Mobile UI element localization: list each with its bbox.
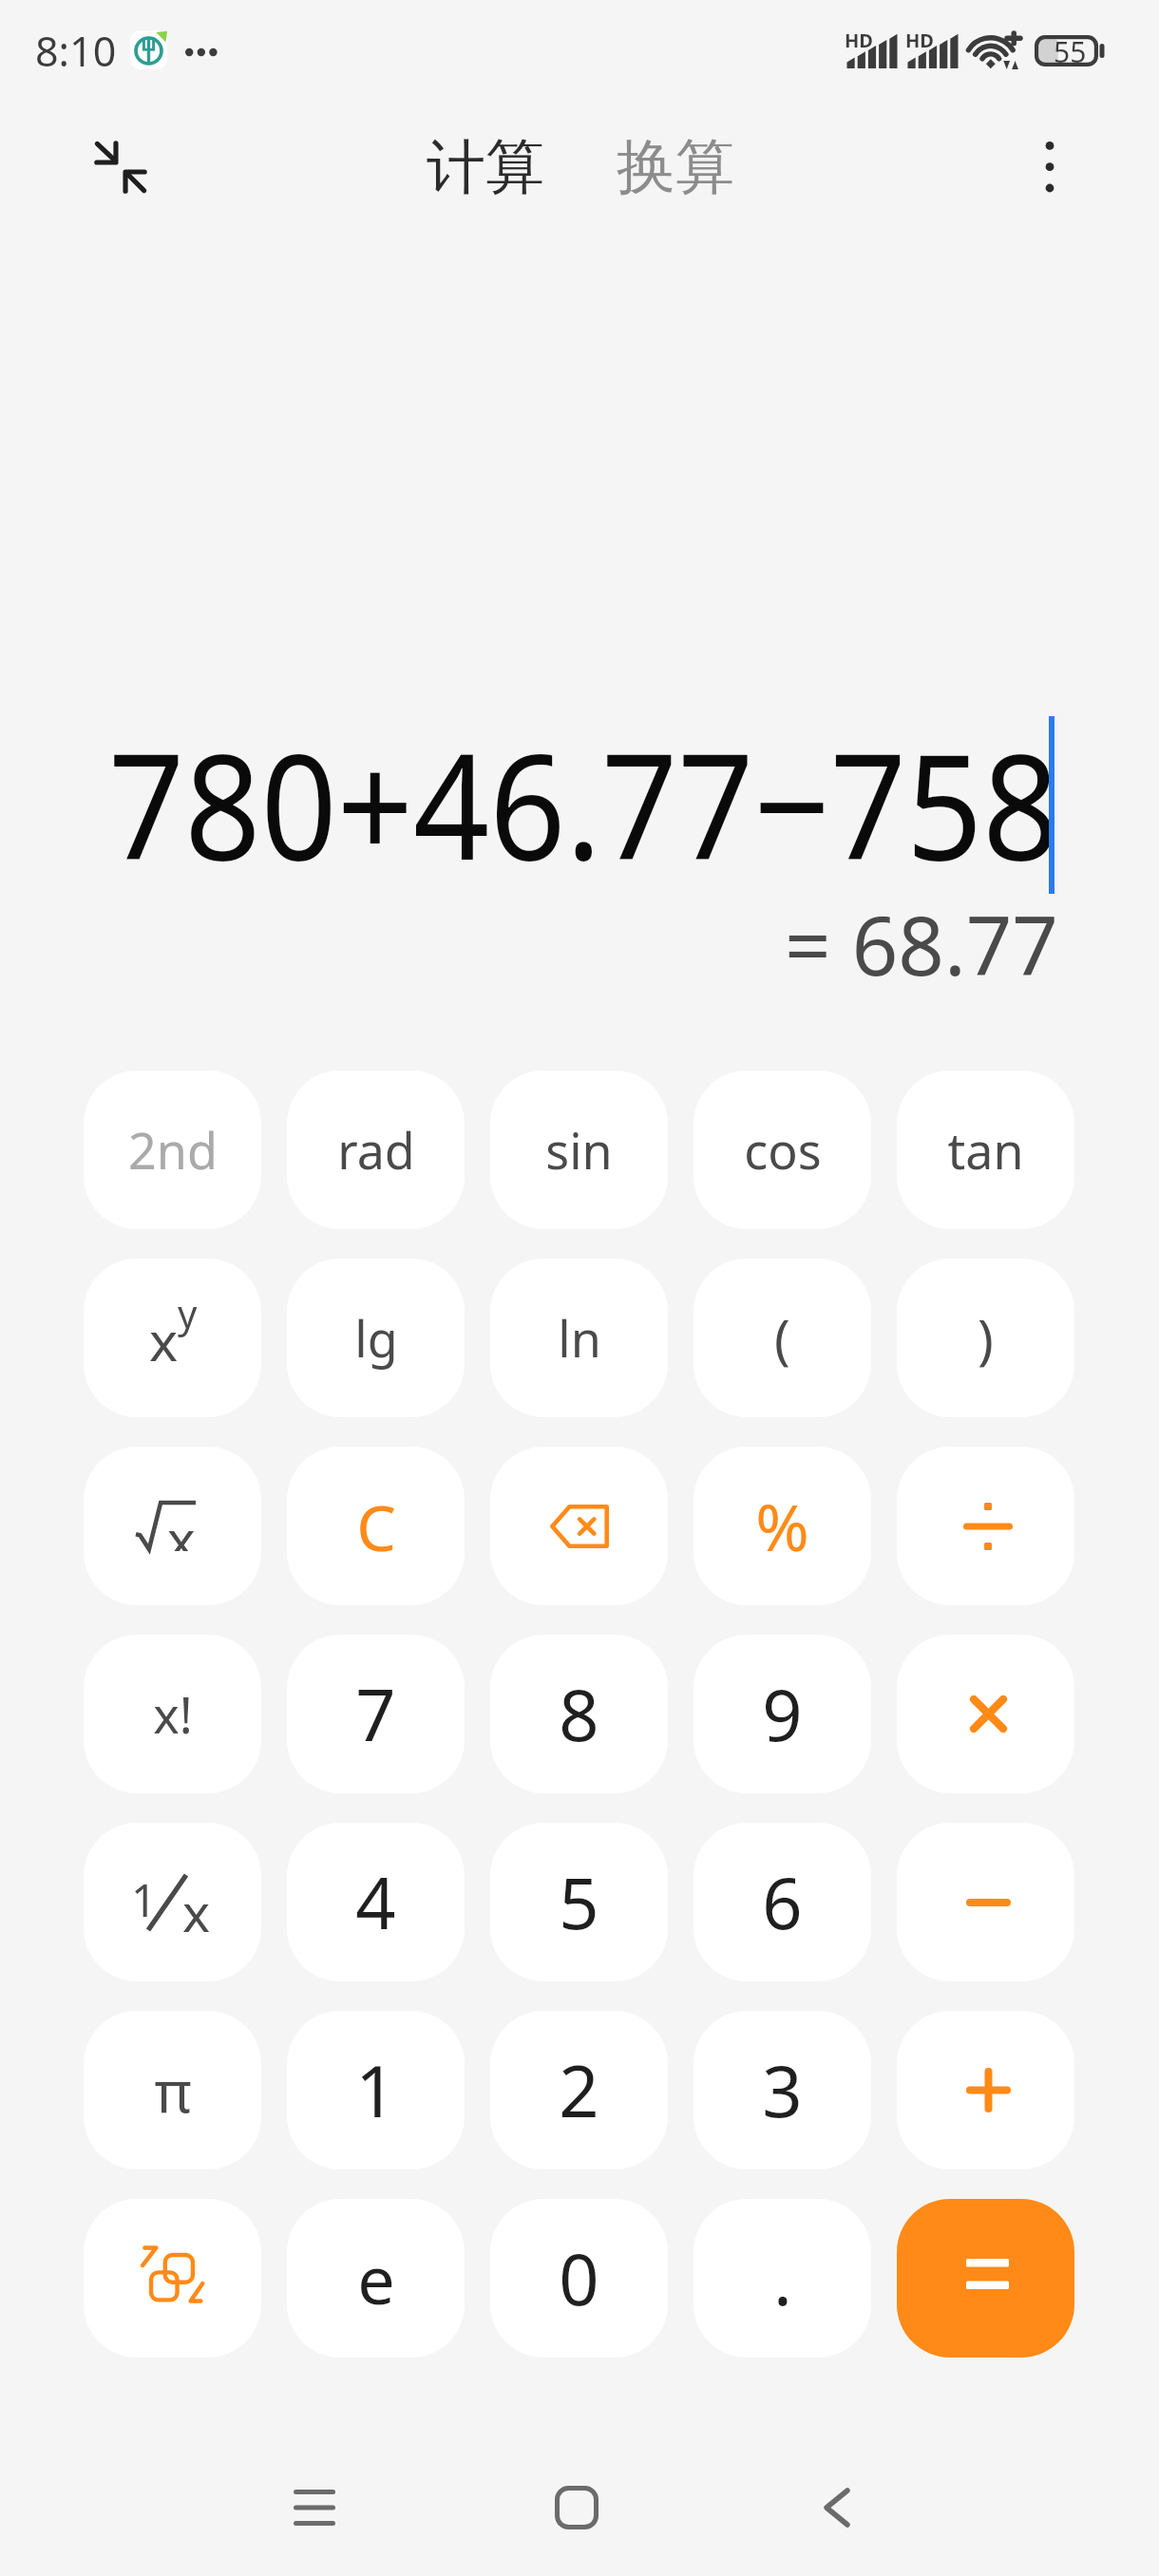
button[interactable]: 5 [490, 1823, 668, 1981]
button[interactable]: Unit conversion [84, 2199, 261, 2358]
other: Multiply [970, 1695, 1007, 1733]
staticText: x [182, 1876, 211, 1935]
staticText: 2nd [128, 1116, 218, 1184]
button[interactable]: e [287, 2199, 465, 2358]
staticText: 780+46.77−758 [108, 703, 1059, 902]
button[interactable]: 0 [490, 2199, 668, 2358]
button[interactable]: rad [287, 1070, 465, 1229]
staticText: tan [947, 1116, 1024, 1184]
button[interactable]: Backspace [490, 1447, 668, 1605]
staticText: lg [354, 1304, 398, 1372]
other: Unit conversion [141, 2245, 204, 2303]
button[interactable]: 7 [287, 1635, 465, 1793]
staticText: 计算 [427, 130, 544, 204]
staticText: e [357, 2233, 395, 2323]
button[interactable]: Minus [897, 1823, 1074, 1981]
button[interactable]: lg [287, 1259, 465, 1417]
staticText: x! [153, 1680, 193, 1748]
button[interactable]: ( [693, 1259, 871, 1417]
button[interactable]: π [84, 2011, 261, 2169]
staticText: 1 [355, 2042, 396, 2138]
staticText: 2 [559, 2042, 599, 2138]
button[interactable]: 换算 [598, 111, 753, 223]
staticText: % [755, 1482, 809, 1570]
staticText: 7 [355, 1666, 396, 1762]
button[interactable]: Equals [897, 2199, 1074, 2358]
staticText: ) [978, 1302, 994, 1374]
staticText: HD [905, 28, 934, 53]
button[interactable]: 计算 [408, 111, 563, 223]
staticText: ( [774, 1302, 790, 1374]
staticText: . [773, 2230, 792, 2326]
staticText: ln [558, 1304, 601, 1372]
button[interactable]: 1 [287, 2011, 465, 2169]
button[interactable]: C [287, 1447, 465, 1605]
staticText: 55 [1054, 32, 1087, 71]
button[interactable]: x! [84, 1635, 261, 1793]
other: Divide [963, 1501, 1013, 1552]
staticText: HD [845, 28, 873, 53]
staticText: 9 [762, 1666, 803, 1762]
staticText: 4 [355, 1854, 396, 1950]
button[interactable]: 6 [693, 1823, 871, 1981]
button[interactable]: x [84, 1447, 261, 1605]
other: Minus [966, 1899, 1011, 1906]
button[interactable]: ) [897, 1259, 1074, 1417]
staticText: 8:10 [35, 23, 117, 79]
other: Backspace [550, 1505, 609, 1548]
staticText: C [356, 1484, 396, 1569]
button[interactable]: 8 [490, 1635, 668, 1793]
button[interactable]: . [693, 2199, 871, 2358]
button[interactable]: cos [693, 1070, 871, 1229]
button[interactable]: x [84, 1259, 261, 1417]
staticText: 换算 [617, 130, 734, 204]
button[interactable]: tan [897, 1070, 1074, 1229]
staticText: 5 [559, 1854, 599, 1950]
button[interactable]: Divide [897, 1447, 1074, 1605]
button[interactable]: 2nd [84, 1070, 261, 1229]
button[interactable]: sin [490, 1070, 668, 1229]
staticText: x [167, 1503, 196, 1551]
other: Equals [966, 2259, 1009, 2289]
button[interactable]: 4 [287, 1823, 465, 1981]
staticText: 1 [131, 1869, 157, 1928]
staticText: 0 [559, 2230, 599, 2326]
button[interactable]: More options [1012, 129, 1088, 205]
button[interactable]: 1 [84, 1823, 261, 1981]
staticText: cos [744, 1116, 822, 1184]
other: Plus [966, 2068, 1011, 2112]
staticText: π [154, 2052, 192, 2130]
button[interactable]: Back [780, 2451, 894, 2565]
button[interactable]: Recents [257, 2451, 371, 2565]
staticText: 6 [762, 1854, 803, 1950]
staticText: 8 [559, 1666, 599, 1762]
staticText: = 68.77 [785, 889, 1058, 999]
button[interactable]: 9 [693, 1635, 871, 1793]
button[interactable]: 3 [693, 2011, 871, 2169]
staticText: sin [545, 1116, 613, 1184]
staticText: y [178, 1287, 198, 1338]
button[interactable]: % [693, 1447, 871, 1605]
button[interactable]: 2 [490, 2011, 668, 2169]
button[interactable]: ln [490, 1259, 668, 1417]
staticText: x [149, 1303, 179, 1377]
button[interactable]: Plus [897, 2011, 1074, 2169]
button[interactable]: Multiply [897, 1635, 1074, 1793]
staticText: 3 [762, 2042, 803, 2138]
button[interactable]: Collapse [66, 132, 161, 227]
button[interactable]: Home [520, 2451, 634, 2565]
staticText: rad [337, 1116, 415, 1184]
